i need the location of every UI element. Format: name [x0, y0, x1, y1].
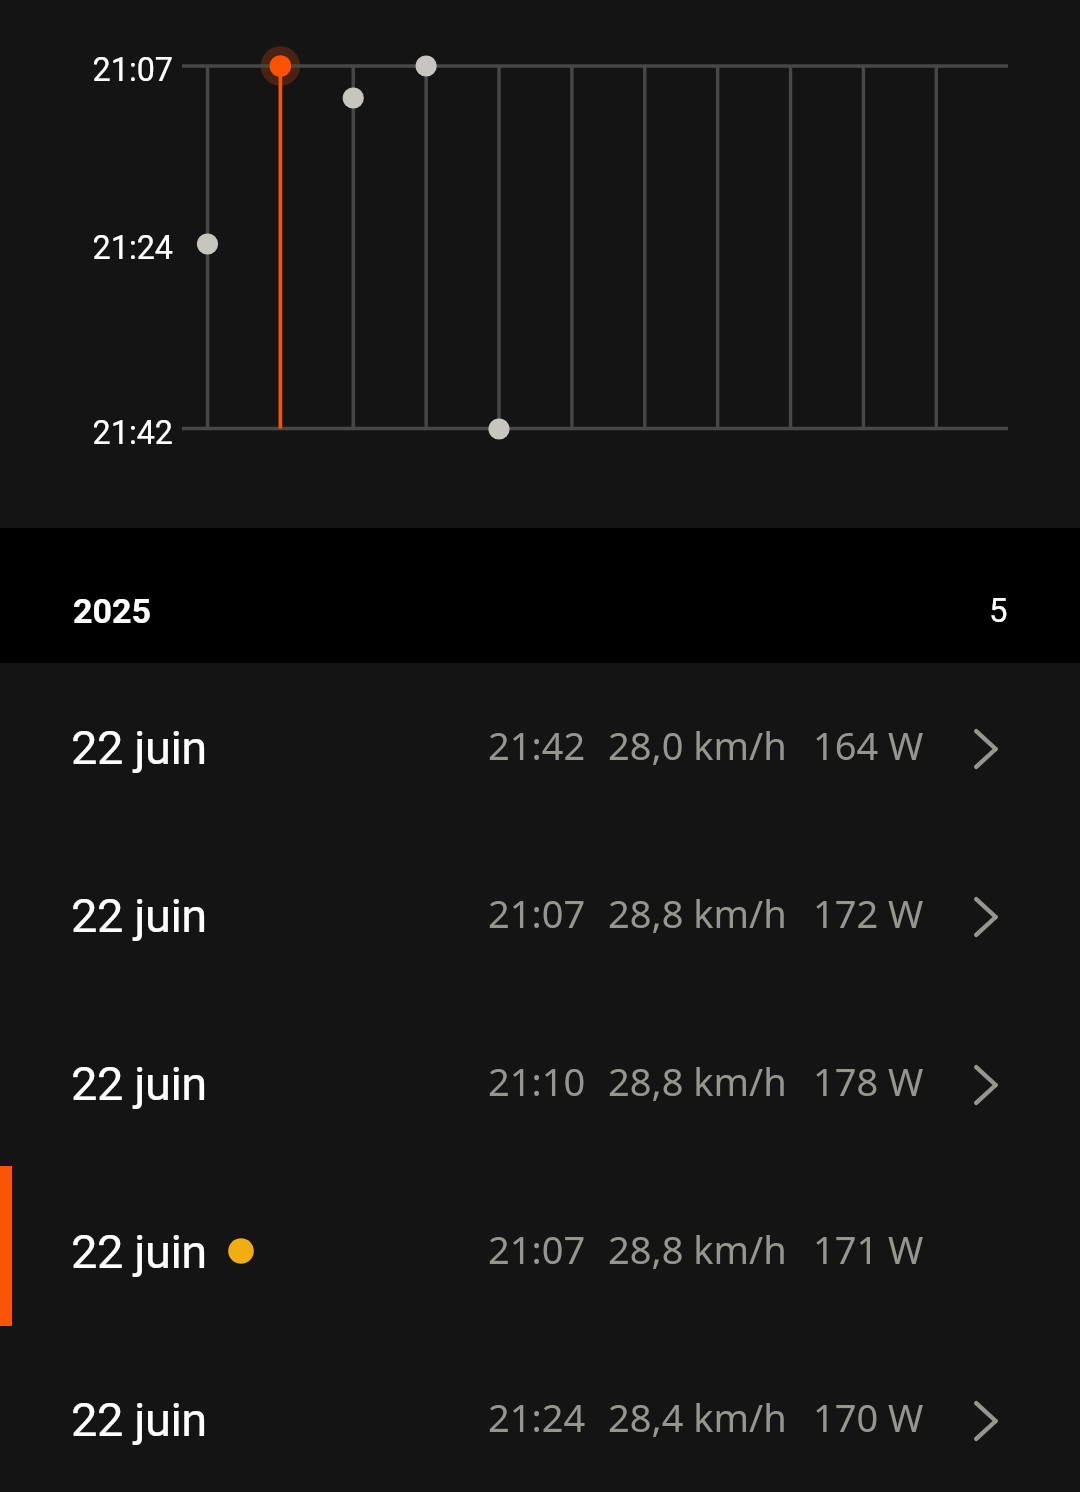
staticText: 164 W	[813, 719, 924, 771]
staticText: 21:07	[488, 1223, 586, 1275]
staticText: 2025	[73, 591, 152, 631]
staticText: 28,8 km/h	[608, 1223, 787, 1275]
button[interactable]: Lap time chart	[0, 0, 1080, 528]
button[interactable]: 2025	[0, 528, 1080, 663]
staticText: 21:07	[488, 887, 586, 939]
staticText: 21:42	[92, 414, 173, 452]
button[interactable]: 22 juin	[0, 999, 1080, 1167]
staticText: 22 juin	[71, 1392, 207, 1447]
staticText: 21:10	[488, 1055, 586, 1107]
staticText: 178 W	[813, 1055, 924, 1107]
other: Open details	[971, 1062, 1001, 1108]
button[interactable]: 22 juin	[0, 1335, 1080, 1492]
other: Open details	[971, 894, 1001, 940]
staticText: 22 juin	[71, 720, 207, 775]
staticText: 28,8 km/h	[608, 1055, 787, 1107]
other: Open details	[971, 1398, 1001, 1444]
staticText: 22 juin	[71, 1224, 207, 1279]
other: Open details	[971, 726, 1001, 772]
staticText: 21:24	[488, 1391, 586, 1443]
staticText: 22 juin	[71, 1056, 207, 1111]
staticText: 170 W	[813, 1391, 924, 1443]
staticText: 21:24	[92, 229, 173, 267]
button[interactable]: 22 juin	[0, 663, 1080, 831]
staticText: 172 W	[813, 887, 924, 939]
button[interactable]: 22 juin	[0, 831, 1080, 999]
staticText: 28,0 km/h	[608, 719, 787, 771]
staticText: 28,4 km/h	[608, 1391, 787, 1443]
staticText: 28,8 km/h	[608, 887, 787, 939]
staticText: 5	[989, 591, 1008, 630]
button[interactable]: 22 juin	[0, 1167, 1080, 1335]
staticText: 22 juin	[71, 888, 207, 943]
staticText: 21:42	[488, 719, 586, 771]
staticText: 171 W	[813, 1223, 924, 1275]
staticText: 21:07	[92, 51, 173, 89]
